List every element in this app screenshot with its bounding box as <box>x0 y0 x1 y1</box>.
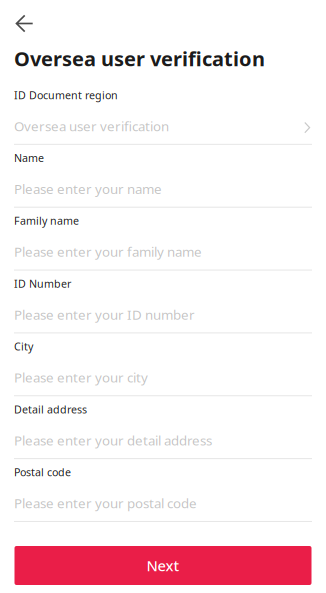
staticText: ID Number <box>14 276 71 291</box>
staticText: Please enter your ID number <box>14 306 195 323</box>
staticText: Please enter your postal code <box>14 494 197 512</box>
button[interactable]: Detail address <box>14 396 312 459</box>
button[interactable]: Next <box>14 546 311 585</box>
staticText: ID Document region <box>14 88 118 102</box>
button[interactable]: Postal code <box>14 459 312 522</box>
staticText: Family name <box>14 214 79 228</box>
staticText: Please enter your family name <box>14 243 202 260</box>
button[interactable]: Name <box>14 145 312 208</box>
button[interactable]: Back <box>8 0 41 43</box>
staticText: Name <box>14 151 44 165</box>
staticText: Oversea user verification <box>14 117 169 135</box>
staticText: Please enter your detail address <box>14 431 212 449</box>
staticText: Oversea user verification <box>14 45 265 72</box>
staticText: Please enter your city <box>14 368 148 386</box>
staticText: Please enter your name <box>14 180 162 198</box>
staticText: City <box>14 339 33 353</box>
staticText: Next <box>146 556 179 575</box>
button[interactable]: City <box>14 333 312 396</box>
button[interactable]: ID Number <box>14 271 312 333</box>
button[interactable]: ID Document region <box>14 82 312 145</box>
button[interactable]: Family name <box>14 208 312 271</box>
staticText: Detail address <box>14 402 87 416</box>
staticText: Postal code <box>14 465 71 479</box>
